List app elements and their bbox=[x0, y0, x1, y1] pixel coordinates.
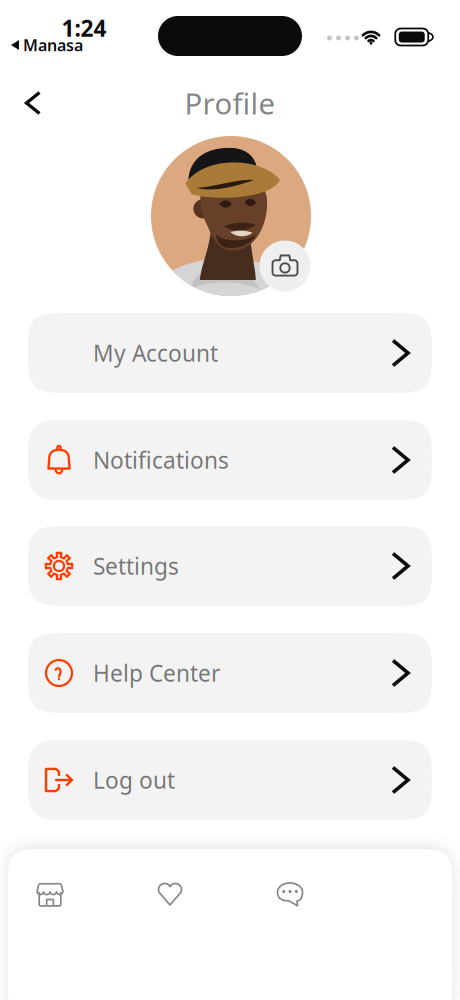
button[interactable]: Messages bbox=[260, 864, 320, 924]
button[interactable]: Favourites bbox=[140, 864, 200, 924]
staticText: Log out bbox=[93, 765, 175, 795]
button[interactable]: Change profile photo bbox=[259, 240, 310, 291]
button[interactable]: Back bbox=[9, 79, 57, 127]
button[interactable]: Help Center bbox=[28, 633, 432, 713]
button[interactable]: Log out bbox=[28, 740, 432, 820]
button[interactable]: Shop bbox=[20, 864, 80, 924]
staticText: My Account bbox=[93, 338, 218, 368]
button[interactable]: Notifications bbox=[28, 420, 432, 500]
staticText: Help Center bbox=[93, 658, 220, 688]
staticText: Manasa bbox=[23, 34, 83, 56]
staticText: Settings bbox=[93, 551, 179, 581]
button[interactable]: Settings bbox=[28, 526, 432, 606]
staticText: 1:24 bbox=[61, 13, 106, 43]
button[interactable]: My Account bbox=[28, 313, 432, 393]
staticText: Notifications bbox=[93, 445, 229, 475]
staticText: Profile bbox=[184, 83, 275, 122]
